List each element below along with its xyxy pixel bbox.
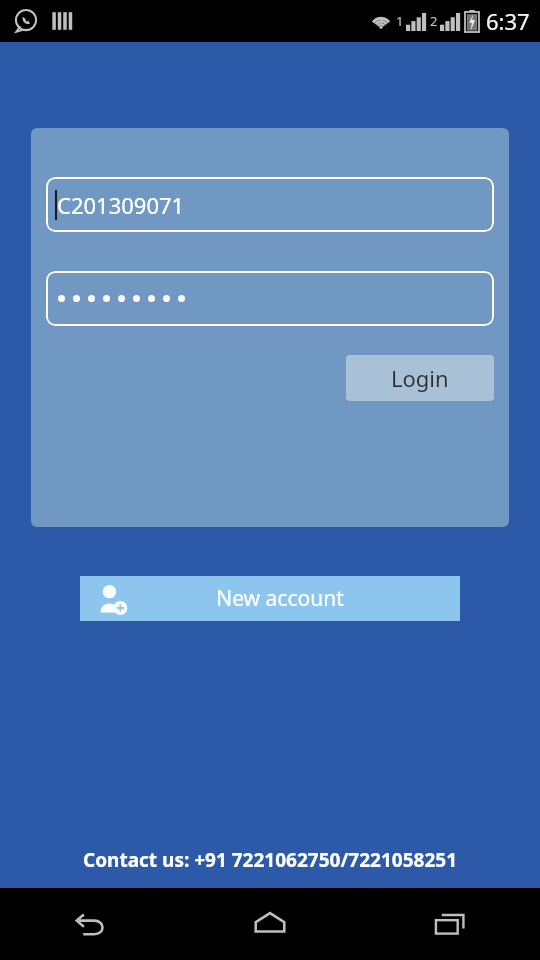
staticText: New account (216, 584, 344, 613)
staticText: Contact us: +91 7221062750/7221058251 (83, 847, 457, 873)
button[interactable]: C201309071 (46, 177, 494, 232)
staticText: Login (391, 363, 449, 393)
button[interactable]: Home (180, 888, 360, 960)
button[interactable] (46, 271, 494, 326)
other: New account (96, 583, 128, 615)
button[interactable]: New account (80, 576, 460, 621)
button[interactable]: Recent apps (360, 888, 540, 960)
staticText: C201309071 (57, 190, 185, 220)
button[interactable]: Login (346, 355, 494, 401)
staticText: 2 (430, 12, 438, 30)
staticText: 6:37 (486, 6, 530, 36)
button[interactable]: Back (0, 888, 180, 960)
staticText: 1 (396, 12, 404, 30)
